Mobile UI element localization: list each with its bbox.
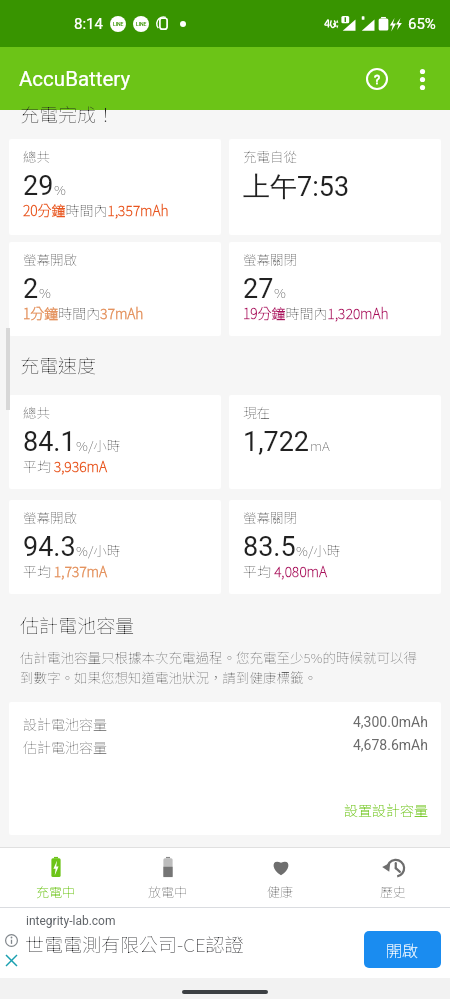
staticText: 4,678.6mAh [353, 737, 428, 753]
button[interactable]: 開啟 [364, 931, 441, 968]
staticText: 20分鐘時間內1,357mAh [23, 200, 169, 220]
staticText: 19分鐘時間內1,320mAh [243, 303, 389, 323]
staticText: 充電自從 [243, 146, 297, 166]
staticText: 充電完成！ [20, 100, 116, 128]
staticText: 估計電池容量只根據本次充電過程。您充電至少5%的時候就可以得 到數字。如果您想知… [20, 647, 417, 687]
staticText: LINE [113, 21, 124, 27]
staticText: 平均 3,936mA [23, 456, 107, 476]
staticText: % [39, 282, 51, 302]
button[interactable]: 充電中 [0, 848, 112, 907]
button[interactable]: 現在 [229, 395, 441, 489]
staticText: % [274, 282, 286, 302]
staticText: 29 [23, 170, 54, 202]
button[interactable]: More options [402, 59, 442, 99]
staticText: ? [374, 72, 381, 87]
staticText: 總共 [23, 402, 50, 422]
staticText: 開啟 [386, 938, 419, 961]
staticText: 平均 4,080mA [243, 561, 327, 581]
staticText: mA [310, 435, 330, 455]
staticText: integrity-lab.com [26, 914, 116, 928]
button[interactable]: integrity-lab.com [0, 907, 450, 978]
button[interactable]: 螢幕關閉 [229, 242, 441, 336]
staticText: 螢幕關閉 [243, 507, 297, 527]
staticText: 2 [23, 273, 39, 305]
button[interactable]: Close ad [6, 955, 17, 966]
button[interactable]: 設置設計容量 [344, 800, 441, 835]
button[interactable]: 螢幕關閉 [229, 500, 441, 594]
staticText: 8:14 [74, 15, 103, 33]
staticText: %/小時 [76, 435, 121, 455]
staticText: %/小時 [296, 540, 341, 560]
staticText: 65% [408, 15, 436, 33]
button[interactable]: 放電中 [112, 848, 224, 907]
staticText: 4,300.0mAh [353, 714, 428, 730]
button[interactable]: 充電自從 [229, 139, 441, 235]
staticText: %/小時 [76, 540, 121, 560]
staticText: 1,722 [243, 426, 310, 458]
staticText: 設置設計容量 [344, 800, 428, 820]
staticText: 估計電池容量 [23, 737, 107, 757]
button[interactable]: Help [355, 57, 399, 101]
staticText: 放電中 [148, 882, 188, 901]
staticText: 螢幕關閉 [243, 249, 297, 269]
staticText: 總共 [23, 146, 50, 166]
staticText: 84.1 [23, 426, 76, 458]
button[interactable]: 設計電池容量 [9, 702, 441, 835]
staticText: 螢幕開啟 [23, 507, 77, 527]
staticText: 平均 1,737mA [23, 561, 107, 581]
staticText: 歷史 [380, 882, 407, 901]
staticText: 1分鐘時間內37mAh [23, 303, 144, 323]
staticText: 螢幕開啟 [23, 249, 77, 269]
button[interactable]: 螢幕開啟 [9, 500, 221, 594]
staticText: 設計電池容量 [23, 714, 107, 734]
button[interactable]: 螢幕開啟 [9, 242, 221, 336]
button[interactable]: 歷史 [337, 848, 450, 907]
staticText: % [54, 179, 66, 199]
staticText: 94.3 [23, 531, 76, 563]
button[interactable]: 健康 [224, 848, 337, 907]
staticText: 27 [243, 273, 274, 305]
staticText: 世電電測有限公司-CE認證 [25, 930, 244, 958]
staticText: LINE [136, 21, 147, 27]
staticText: 充電速度 [20, 351, 97, 379]
staticText: 83.5 [243, 531, 296, 563]
button[interactable]: 總共 [9, 139, 221, 235]
button[interactable]: 總共 [9, 395, 221, 489]
staticText: AccuBattery [19, 67, 131, 91]
staticText: 現在 [243, 402, 270, 422]
staticText: 估計電池容量 [20, 611, 135, 639]
staticText: 健康 [267, 882, 294, 901]
staticText: 上午7:53 [243, 170, 350, 204]
staticText: 充電中 [36, 882, 76, 901]
